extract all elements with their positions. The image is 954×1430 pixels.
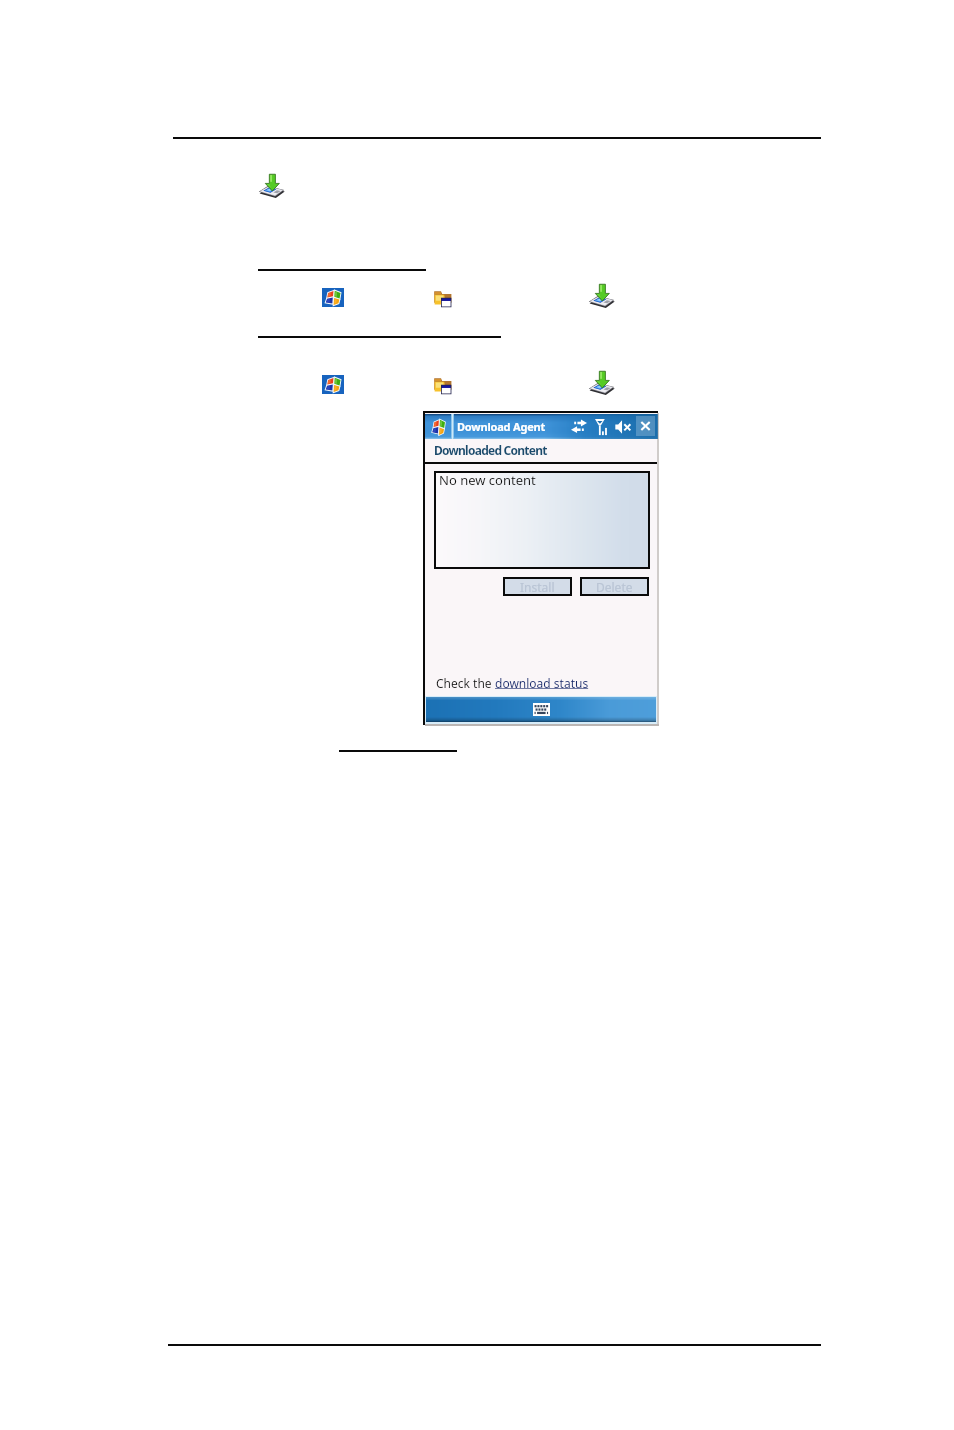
button[interactable]: Connectivity [571,419,587,434]
staticText: Check the [436,675,495,691]
staticText: Delete [596,579,633,594]
button[interactable]: No new content [436,473,648,567]
staticText: download status [495,675,589,691]
button[interactable]: download status [495,675,589,691]
button[interactable]: Close [636,416,655,436]
staticText: Download Agent [457,419,546,434]
staticText: No new content [439,471,536,489]
button[interactable]: Show keyboard [533,703,550,716]
button[interactable]: Sound muted [615,420,631,434]
staticText: Downloaded Content [434,442,547,458]
button[interactable]: Signal strength [595,418,609,436]
button[interactable]: Delete [582,579,647,594]
button[interactable]: Install [505,579,570,594]
staticText: Install [520,579,555,594]
